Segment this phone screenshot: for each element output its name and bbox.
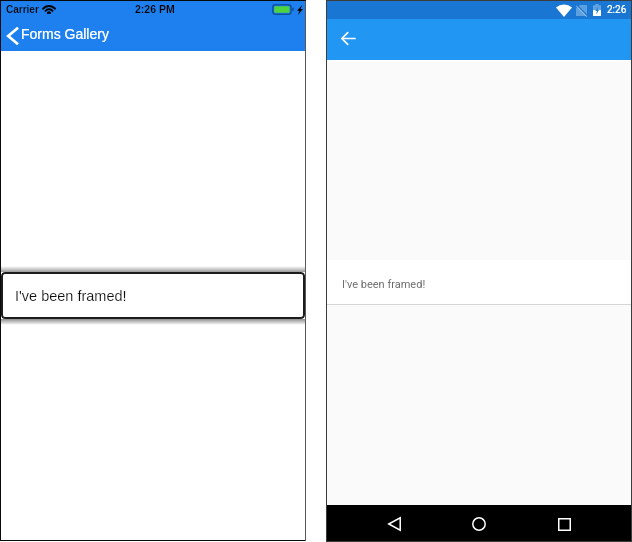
button[interactable]: Forms Gallery <box>1 27 117 45</box>
staticText: I've been framed! <box>342 278 426 291</box>
button[interactable]: Recent apps <box>548 509 580 537</box>
staticText: Forms Gallery <box>21 26 109 42</box>
staticText: 2:26 <box>607 4 627 16</box>
staticText: 2:26 PM <box>135 3 175 15</box>
staticText: Carrier <box>6 4 39 15</box>
button[interactable]: I've been framed! <box>1 272 305 319</box>
button[interactable]: I've been framed! <box>327 260 631 305</box>
button[interactable]: Back <box>378 509 410 537</box>
staticText: I've been framed! <box>15 288 127 304</box>
button[interactable]: Navigate up <box>333 27 357 51</box>
button[interactable]: Home <box>463 509 495 537</box>
